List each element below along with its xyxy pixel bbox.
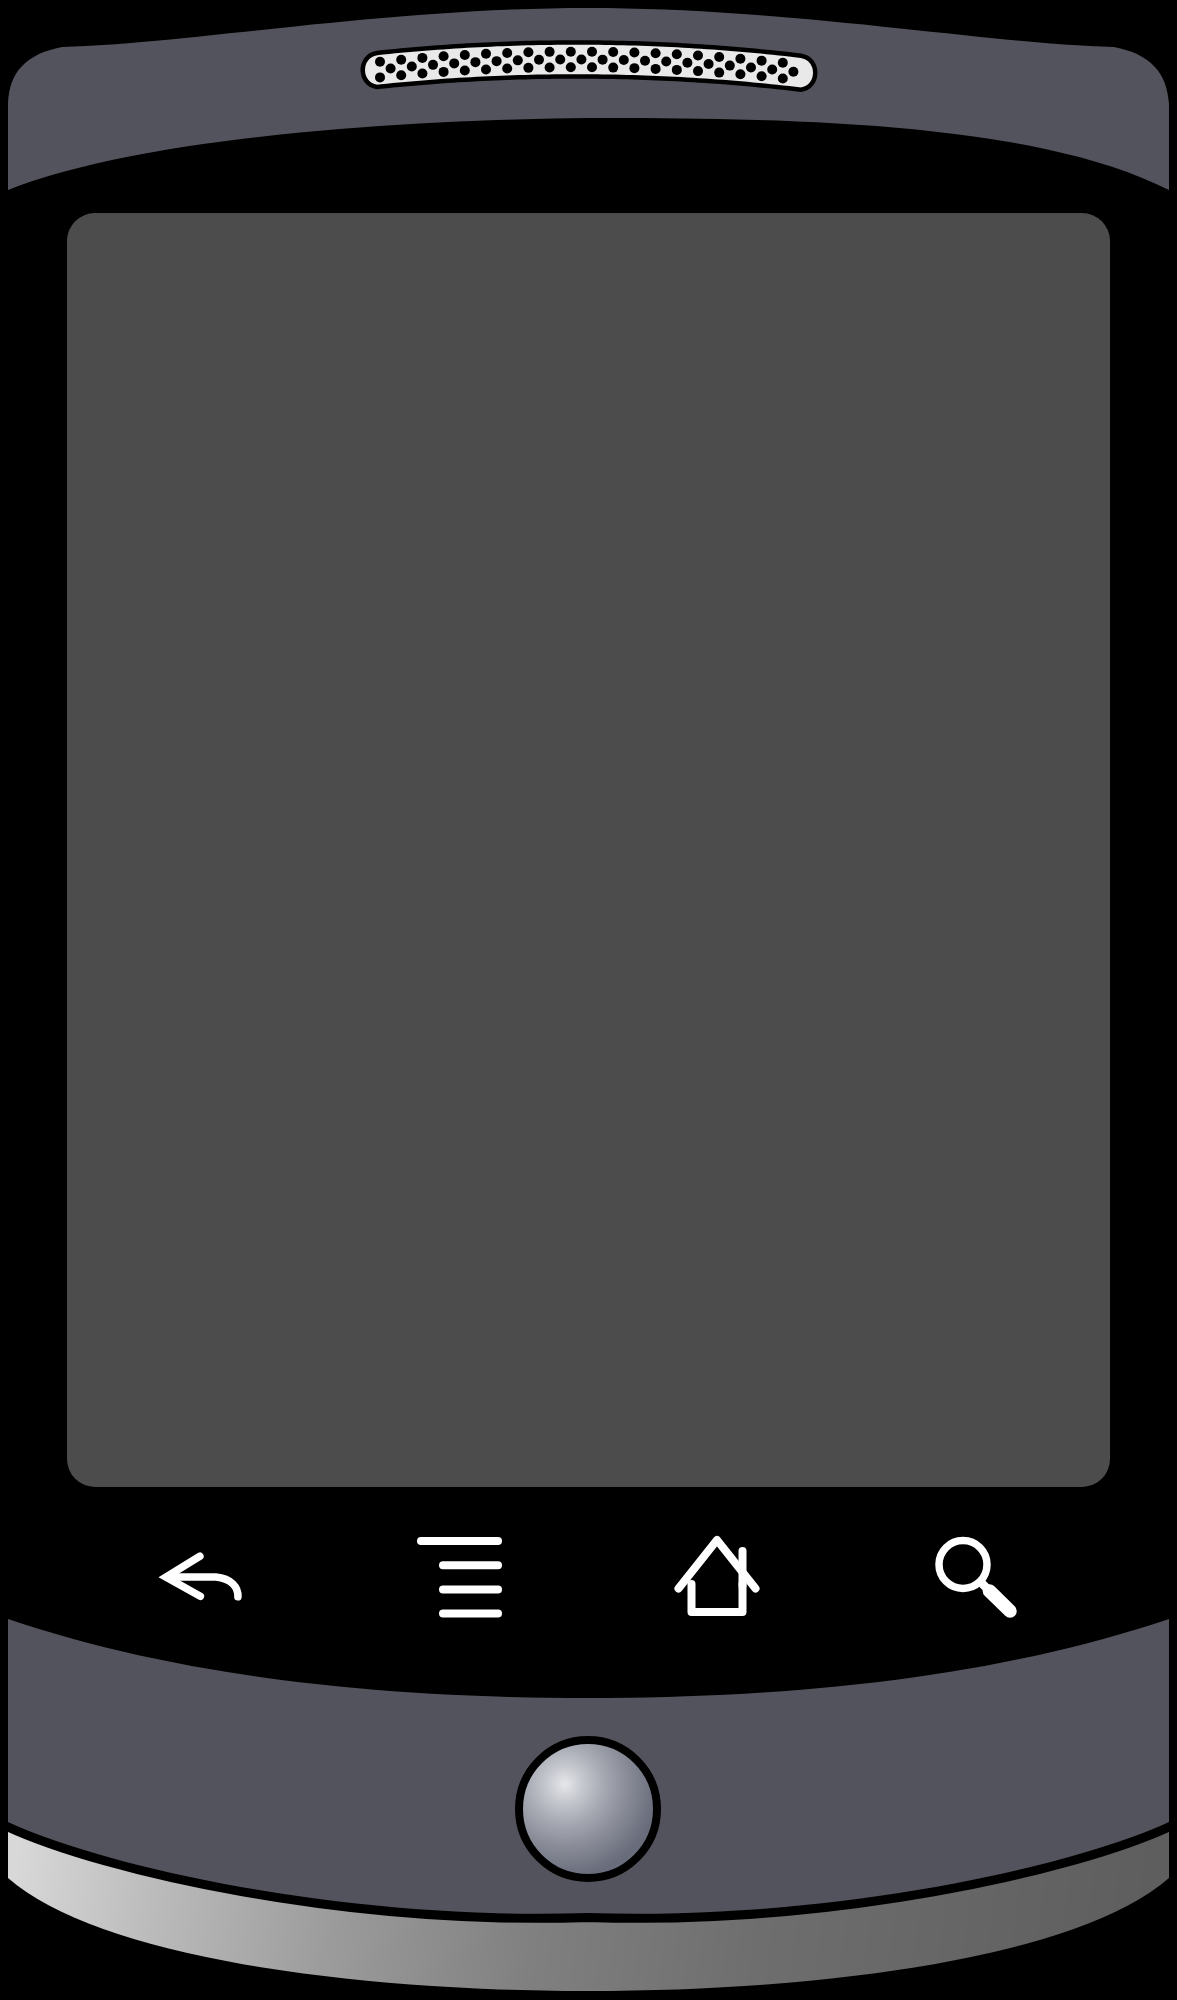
button[interactable]: Trackball	[511, 1732, 665, 1886]
button[interactable]: Search	[914, 1516, 1046, 1640]
button[interactable]: Home	[656, 1516, 788, 1640]
button[interactable]: Back	[140, 1516, 272, 1640]
button[interactable]: Menu	[398, 1516, 530, 1640]
